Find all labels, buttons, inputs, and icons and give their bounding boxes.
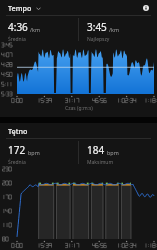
staticText: Czas (g:m:s) <box>65 105 93 112</box>
staticText: /km <box>109 26 119 33</box>
staticText: 172 <box>8 143 26 157</box>
button[interactable]: 184 <box>79 139 157 166</box>
staticText: 3:45 <box>87 20 107 34</box>
staticText: bpm <box>107 149 119 156</box>
button[interactable]: 3:45 <box>79 16 157 43</box>
staticText: Najlepszy <box>87 36 110 43</box>
button[interactable]: Tempo <box>8 3 41 13</box>
staticText: Maksimum <box>87 159 114 166</box>
staticText: bpm <box>28 149 40 156</box>
staticText: 184 <box>87 143 105 157</box>
staticText: Tętno <box>8 126 28 136</box>
staticText: Średnia <box>8 36 26 43</box>
staticText: Średnia <box>8 159 26 166</box>
staticText: /km <box>30 26 40 33</box>
staticText: 4:36 <box>8 20 28 34</box>
button[interactable]: Tętno <box>8 126 28 136</box>
button[interactable]: Informacje <box>140 2 152 14</box>
button[interactable]: 172 <box>0 139 78 166</box>
button[interactable]: 4:36 <box>0 16 78 43</box>
staticText: Tempo <box>8 3 32 13</box>
